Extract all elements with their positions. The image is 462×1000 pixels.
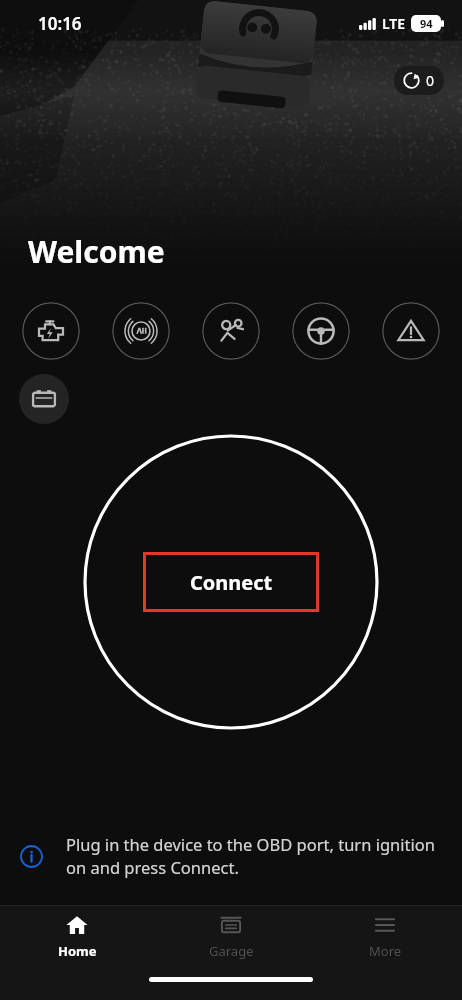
button[interactable]: ABS <box>112 302 170 360</box>
button[interactable]: Home <box>0 906 154 966</box>
staticText: 10:16 <box>38 12 82 35</box>
button[interactable]: Refresh count <box>394 66 444 95</box>
staticText: LTE <box>382 14 406 33</box>
button[interactable]: More <box>308 906 462 966</box>
staticText: 94 <box>420 16 433 31</box>
staticText: Welcome <box>28 231 165 272</box>
staticText: 0 <box>426 71 435 90</box>
staticText: Home <box>58 942 97 960</box>
button[interactable]: Garage <box>154 906 308 966</box>
button[interactable]: Engine <box>22 302 80 360</box>
staticText: More <box>369 942 402 960</box>
button[interactable]: Airbag <box>202 302 260 360</box>
button[interactable]: Warning <box>382 302 440 360</box>
button[interactable]: Steering <box>292 302 350 360</box>
staticText: Connect <box>190 569 273 596</box>
staticText: Plug in the device to the OBD port, turn… <box>66 833 436 879</box>
staticText: Garage <box>209 942 254 960</box>
button[interactable]: Battery <box>19 374 69 424</box>
button[interactable]: Connect <box>143 552 319 612</box>
